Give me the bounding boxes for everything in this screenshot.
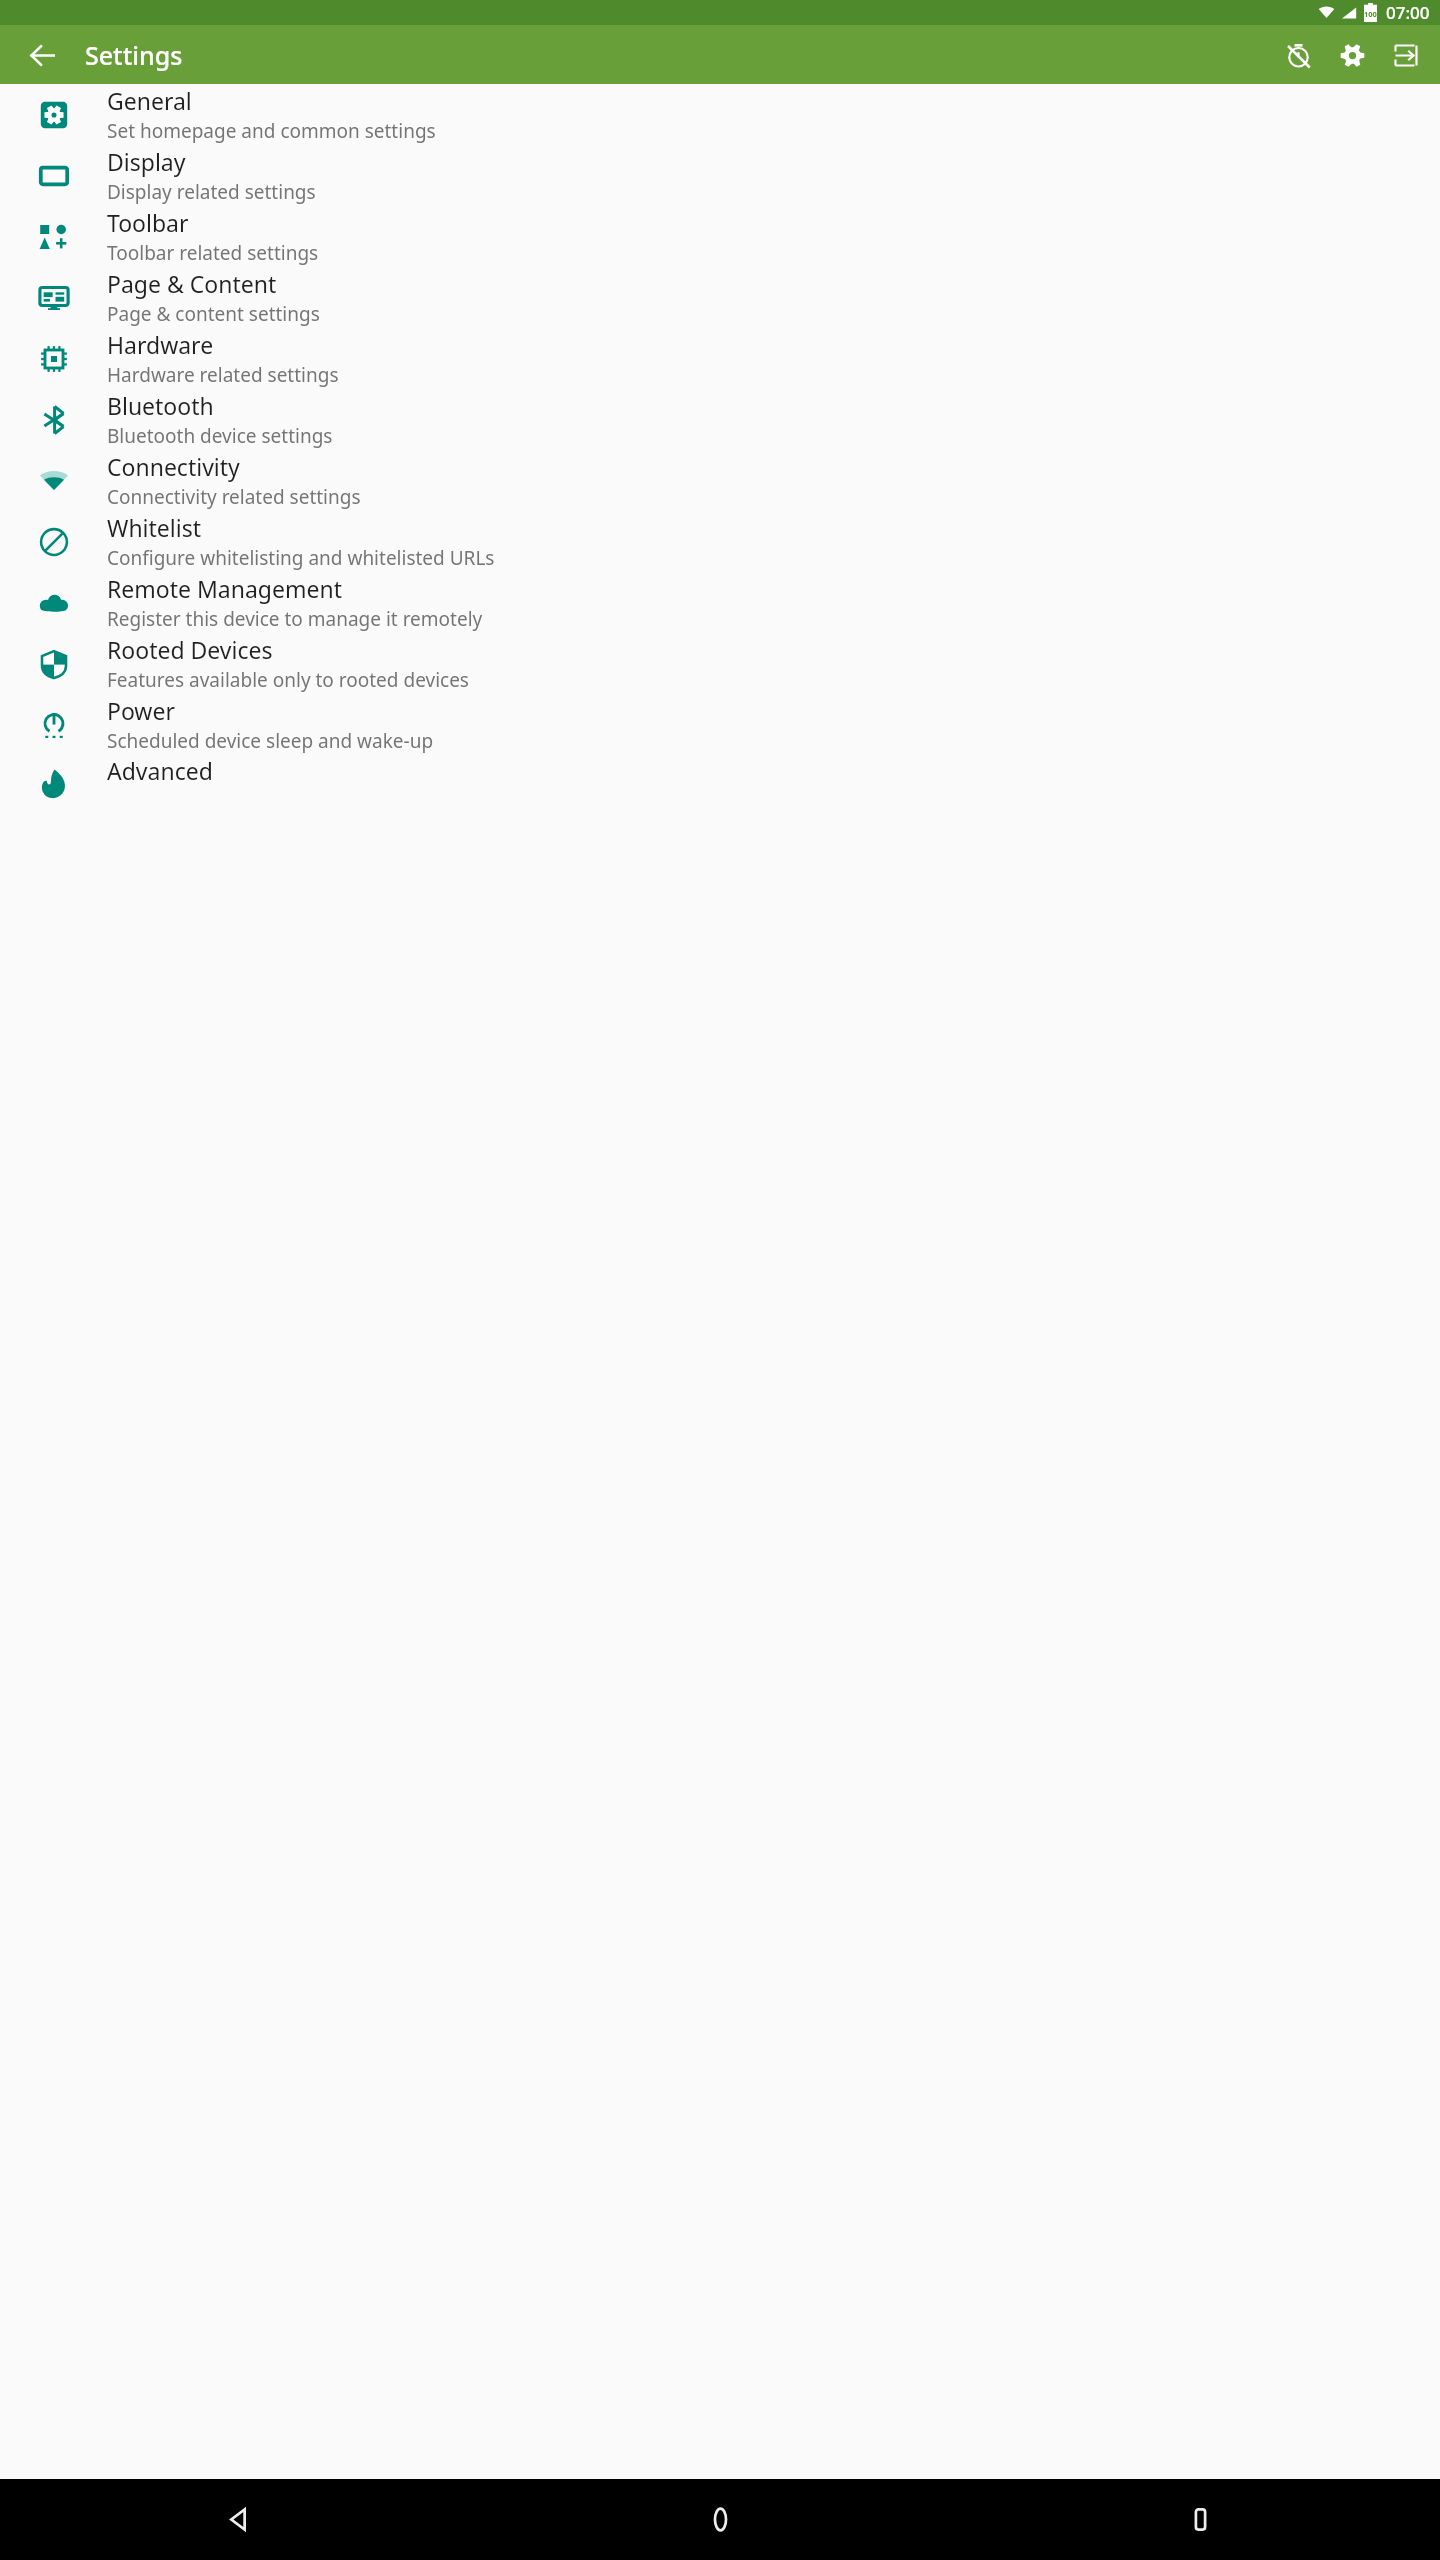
button[interactable]: Whitelist xyxy=(0,511,1440,572)
staticText: Toolbar related settings xyxy=(107,240,319,266)
button[interactable]: Home xyxy=(480,2479,960,2560)
button[interactable]: Back xyxy=(0,2479,480,2560)
staticText: Toolbar xyxy=(107,207,189,238)
button[interactable]: Bluetooth xyxy=(0,389,1440,450)
staticText: Display related settings xyxy=(107,179,316,205)
staticText: Whitelist xyxy=(107,512,202,543)
button[interactable]: Rooted Devices xyxy=(0,633,1440,694)
staticText: Page & Content xyxy=(107,268,277,299)
staticText: Hardware xyxy=(107,329,214,360)
staticText: General xyxy=(107,85,192,116)
button[interactable]: Timer off xyxy=(1275,32,1321,78)
staticText: Connectivity related settings xyxy=(107,484,361,510)
staticText: Bluetooth xyxy=(107,390,214,421)
button[interactable]: Connectivity xyxy=(0,450,1440,511)
button[interactable]: Page & Content xyxy=(0,267,1440,328)
staticText: Settings xyxy=(85,38,183,72)
staticText: 07:00 xyxy=(1386,1,1430,24)
button[interactable]: Exit xyxy=(1383,32,1429,78)
button[interactable]: Power xyxy=(0,694,1440,755)
staticText: Scheduled device sleep and wake-up xyxy=(107,728,434,754)
button[interactable]: Recents xyxy=(960,2479,1440,2560)
staticText: Features available only to rooted device… xyxy=(107,667,469,693)
staticText: Hardware related settings xyxy=(107,362,339,388)
button[interactable]: General xyxy=(0,84,1440,145)
staticText: 100 xyxy=(1364,9,1377,19)
staticText: Display xyxy=(107,146,186,177)
staticText: Rooted Devices xyxy=(107,634,273,665)
button[interactable]: Advanced xyxy=(0,755,1440,789)
staticText: Connectivity xyxy=(107,451,240,482)
staticText: Configure whitelisting and whitelisted U… xyxy=(107,545,495,571)
staticText: Bluetooth device settings xyxy=(107,423,333,449)
staticText: Register this device to manage it remote… xyxy=(107,606,483,632)
staticText: Power xyxy=(107,695,175,726)
button[interactable]: Settings xyxy=(1329,32,1375,78)
staticText: Remote Management xyxy=(107,573,342,604)
button[interactable]: Remote Management xyxy=(0,572,1440,633)
staticText: Advanced xyxy=(107,755,213,786)
button[interactable]: Toolbar xyxy=(0,206,1440,267)
staticText: Page & content settings xyxy=(107,301,320,327)
button[interactable]: Display xyxy=(0,145,1440,206)
button[interactable]: Back xyxy=(18,31,66,79)
button[interactable]: Hardware xyxy=(0,328,1440,389)
staticText: Set homepage and common settings xyxy=(107,118,436,144)
